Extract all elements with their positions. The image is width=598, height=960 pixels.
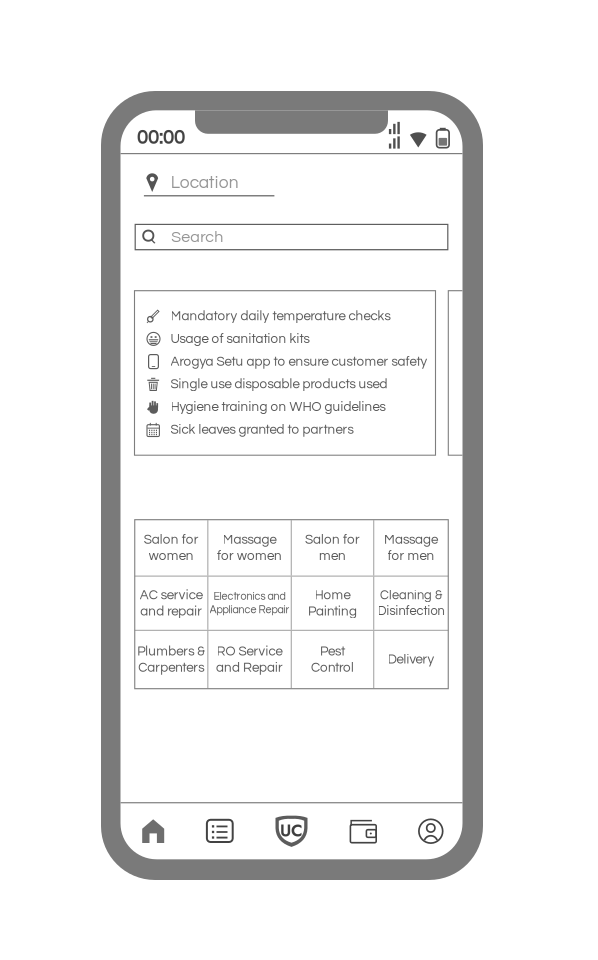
- staticText: Sick leaves granted to partners: [170, 423, 353, 436]
- button[interactable]: Location: [120, 154, 462, 196]
- button[interactable]: Search: [135, 196, 448, 250]
- staticText: Massage: [223, 533, 277, 547]
- button[interactable]: Pest: [292, 631, 373, 688]
- staticText: Search: [171, 229, 223, 245]
- button[interactable]: Delivery: [374, 631, 448, 688]
- button[interactable]: Massage: [208, 520, 291, 576]
- staticText: Salon for: [144, 533, 199, 547]
- button[interactable]: Salon for: [292, 520, 373, 576]
- staticText: RO Service: [217, 644, 283, 658]
- staticText: and Repair: [216, 661, 283, 674]
- button[interactable]: Salon for: [135, 520, 207, 576]
- staticText: Appliance Repair: [210, 604, 290, 615]
- staticText: Massage: [384, 533, 438, 547]
- staticText: Mandatory daily temperature checks: [170, 309, 390, 323]
- staticText: Single use disposable products used: [170, 377, 387, 391]
- button[interactable]: Massage: [374, 520, 448, 576]
- staticText: for men: [387, 549, 434, 563]
- button[interactable]: Home: [120, 803, 189, 859]
- button[interactable]: Electronics and: [208, 577, 291, 630]
- staticText: Cleaning &: [380, 589, 442, 602]
- staticText: Carpenters: [138, 661, 204, 674]
- staticText: UC: [280, 819, 303, 843]
- staticText: women: [149, 549, 194, 563]
- staticText: AC service: [140, 588, 203, 602]
- staticText: Delivery: [387, 653, 434, 666]
- button[interactable]: RO Service: [208, 631, 291, 688]
- button[interactable]: Plumbers &: [135, 631, 207, 688]
- staticText: Usage of sanitation kits: [170, 332, 309, 346]
- button[interactable]: Home: [292, 577, 373, 630]
- staticText: Hygiene training on WHO guidelines: [170, 400, 385, 414]
- button[interactable]: Account: [394, 803, 462, 859]
- staticText: Electronics and: [214, 591, 286, 602]
- staticText: Pest: [320, 644, 345, 658]
- staticText: Painting: [308, 604, 357, 618]
- staticText: and repair: [140, 604, 202, 618]
- staticText: Home: [314, 588, 350, 602]
- staticText: Arogya Setu app to ensure customer safet…: [170, 355, 427, 368]
- button[interactable]: Wallet: [326, 803, 394, 859]
- staticText: men: [319, 549, 346, 563]
- staticText: Salon for: [305, 533, 360, 547]
- staticText: Location: [171, 174, 239, 192]
- button[interactable]: UC Safety: [257, 803, 326, 859]
- staticText: Control: [311, 661, 354, 674]
- staticText: Disinfection: [377, 604, 444, 618]
- button[interactable]: Cleaning &: [374, 577, 448, 630]
- button[interactable]: Bookings: [189, 803, 257, 859]
- staticText: Plumbers &: [137, 644, 205, 658]
- staticText: 00:00: [137, 127, 185, 148]
- staticText: for women: [217, 549, 282, 563]
- button[interactable]: AC service: [135, 577, 207, 630]
